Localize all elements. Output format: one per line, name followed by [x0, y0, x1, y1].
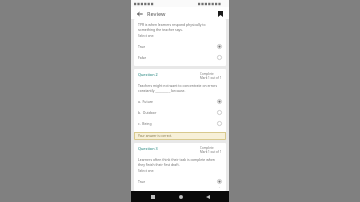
staticText: b. Outdoor — [138, 110, 157, 115]
staticText: True — [138, 44, 146, 49]
button[interactable]: Back — [135, 9, 144, 18]
staticText: Complete — [200, 146, 214, 150]
staticText: True — [138, 179, 146, 184]
button[interactable]: c. Being — [138, 118, 222, 129]
staticText: a. Future — [138, 99, 153, 104]
staticText: False — [138, 55, 147, 60]
staticText: Teachers might not want to concentrate o… — [138, 83, 222, 93]
button[interactable]: Back — [202, 191, 213, 202]
staticText: Mark 1 out of 1 — [200, 76, 222, 80]
button[interactable]: Recents — [147, 191, 158, 202]
staticText: Complete — [200, 72, 214, 76]
staticText: Question 2 — [138, 72, 158, 77]
button[interactable]: a. Future — [138, 96, 222, 107]
staticText: Learners often think their task is compl… — [138, 157, 222, 167]
button[interactable]: True — [138, 176, 222, 187]
button[interactable]: False — [138, 52, 222, 63]
button[interactable]: Bookmark — [216, 9, 225, 18]
staticText: Your answer is correct. — [138, 134, 172, 138]
staticText: Select one: — [138, 169, 155, 173]
button[interactable]: b. Outdoor — [138, 107, 222, 118]
staticText: Mark 1 out of 1 — [200, 150, 222, 154]
button[interactable]: Home — [175, 191, 186, 202]
staticText: c. Being — [138, 121, 152, 126]
staticText: Review — [147, 10, 166, 17]
staticText: Select one: — [138, 34, 155, 38]
staticText: TPR is when learners respond physically … — [138, 22, 222, 32]
button[interactable]: True — [138, 41, 222, 52]
staticText: Question 3 — [138, 146, 158, 151]
